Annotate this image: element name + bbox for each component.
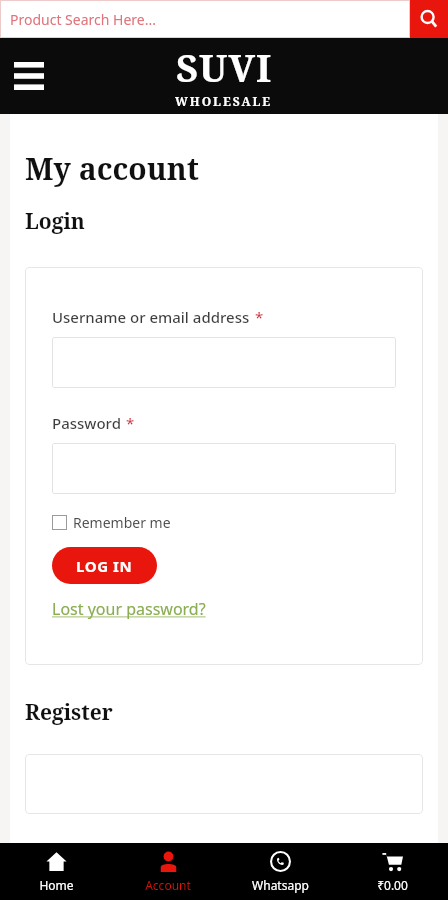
button[interactable]: ₹0.00 <box>336 843 448 900</box>
staticText: Remember me <box>73 513 171 532</box>
staticText: * <box>126 413 135 433</box>
button[interactable]: Whatsapp <box>224 843 336 900</box>
button[interactable] <box>52 443 396 494</box>
button[interactable]: Remember me <box>52 513 171 532</box>
staticText: Whatsapp <box>252 877 309 893</box>
staticText: LOG IN <box>76 556 133 576</box>
staticText: WHOLESALE <box>175 93 273 109</box>
button[interactable]: Account <box>112 843 224 900</box>
staticText: Account <box>145 877 191 893</box>
staticText: Home <box>39 877 74 893</box>
staticText: Lost your password? <box>52 598 206 620</box>
button[interactable] <box>52 337 396 388</box>
staticText: Username or email address <box>52 307 250 327</box>
staticText: Password <box>52 413 121 433</box>
staticText: Login <box>25 207 85 236</box>
staticText: ₹0.00 <box>377 877 408 893</box>
button[interactable]: Home <box>0 843 112 900</box>
staticText: My account <box>25 148 199 189</box>
staticText: * <box>255 307 264 327</box>
button[interactable]: LOG IN <box>52 547 157 584</box>
button[interactable]: Search <box>410 0 448 38</box>
staticText: SUVI <box>176 41 273 93</box>
button[interactable]: Menu <box>8 55 50 97</box>
button[interactable]: Lost your password? <box>52 598 206 620</box>
staticText: Register <box>25 698 113 727</box>
button[interactable]: Product Search Here... <box>0 0 410 38</box>
staticText: Product Search Here... <box>10 10 156 29</box>
